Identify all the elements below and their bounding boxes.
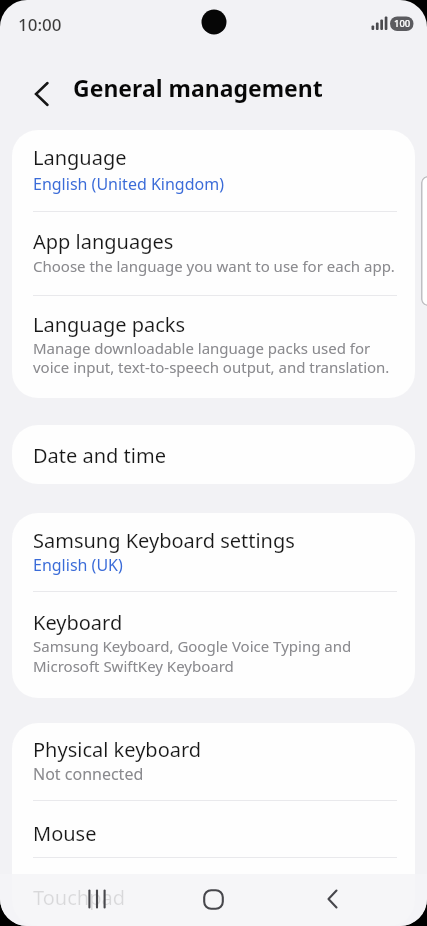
button[interactable]: Samsung Keyboard settings [12,513,415,591]
staticText: English (UK) [33,554,123,576]
button[interactable] [75,880,119,918]
button[interactable]: Language packs [12,296,415,398]
button[interactable]: Language [12,130,415,211]
staticText: 10:00 [18,13,62,36]
button[interactable] [311,880,355,918]
staticText: Keyboard [33,609,123,636]
staticText: Physical keyboard [33,736,202,763]
button[interactable]: Physical keyboard [12,723,415,800]
button[interactable]: Mouse [12,801,415,857]
staticText: Mouse [33,820,97,847]
staticText: Language [33,144,127,171]
staticText: App languages [33,228,174,255]
staticText: Samsung Keyboard settings [33,527,295,554]
staticText: English (United Kingdom) [33,173,224,195]
button[interactable] [27,74,55,102]
staticText: Samsung Keyboard, Google Voice Typing an… [33,636,352,676]
staticText: Manage downloadable language packs used … [33,338,390,378]
button[interactable] [191,880,235,918]
staticText: 100 [394,17,411,30]
staticText: Choose the language you want to use for … [33,256,395,276]
staticText: Not connected [33,763,144,785]
staticText: Language packs [33,311,186,338]
staticText: Date and time [33,442,166,469]
button[interactable]: Touchpad [12,858,415,926]
button[interactable]: Date and time [12,425,415,484]
button[interactable]: App languages [12,212,415,295]
button[interactable]: Keyboard [12,592,415,698]
staticText: Touchpad [33,884,125,911]
staticText: General management [73,72,323,103]
